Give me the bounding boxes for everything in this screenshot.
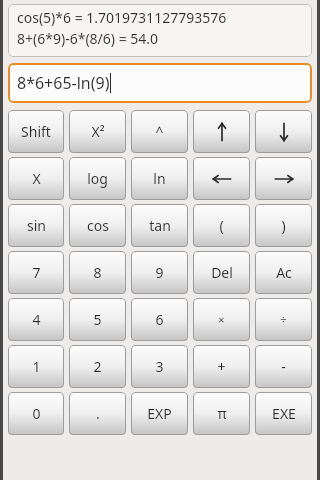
button[interactable]: ) — [255, 204, 312, 247]
staticText: EXP — [147, 404, 172, 423]
staticText: Ac — [276, 263, 292, 282]
staticText: ln — [153, 169, 166, 188]
staticText: π — [217, 404, 227, 423]
staticText: X — [32, 169, 41, 188]
staticText: ( — [219, 216, 224, 235]
button[interactable]: tan — [131, 204, 188, 247]
staticText: cos — [87, 216, 109, 235]
button[interactable]: sin — [8, 204, 64, 247]
button[interactable]: EXE — [255, 392, 312, 435]
button[interactable]: 8 — [69, 251, 126, 294]
staticText: 8*6+65-ln(9) — [17, 72, 110, 94]
staticText: tan — [149, 216, 171, 235]
button[interactable]: Move right — [255, 157, 312, 200]
button[interactable]: - — [255, 345, 312, 388]
staticText: cos(5)*6 = 1.7019731127793576 — [17, 8, 227, 27]
staticText: EXE — [272, 404, 296, 423]
staticText: - — [281, 357, 286, 376]
staticText: Shift — [21, 122, 51, 141]
staticText: 8+(6*9)-6*(8/6) = 54.0 — [17, 29, 159, 48]
staticText: ^ — [155, 122, 164, 141]
button[interactable]: ( — [193, 204, 250, 247]
button[interactable]: Del — [193, 251, 250, 294]
button[interactable]: X — [8, 157, 64, 200]
button[interactable]: Move up — [193, 110, 250, 153]
staticText: 4 — [32, 310, 41, 329]
button[interactable]: 2 — [69, 345, 126, 388]
button[interactable]: 7 — [8, 251, 64, 294]
staticText: × — [218, 312, 225, 327]
button[interactable]: log — [69, 157, 126, 200]
staticText: 2 — [93, 357, 102, 376]
staticText: 1 — [32, 357, 41, 376]
staticText: 3 — [155, 357, 164, 376]
staticText: 7 — [32, 263, 41, 282]
button[interactable]: cos — [69, 204, 126, 247]
button[interactable]: Shift — [8, 110, 64, 153]
button[interactable]: . — [69, 392, 126, 435]
button[interactable]: π — [193, 392, 250, 435]
staticText: 0 — [32, 404, 41, 423]
staticText: ) — [281, 216, 286, 235]
staticText: X² — [91, 122, 105, 141]
staticText: 6 — [155, 310, 164, 329]
button[interactable]: ln — [131, 157, 188, 200]
button[interactable]: ÷ — [255, 298, 312, 341]
button[interactable]: 8*6+65-ln(9) — [8, 63, 312, 103]
button[interactable]: 9 — [131, 251, 188, 294]
button[interactable]: 6 — [131, 298, 188, 341]
staticText: sin — [27, 216, 46, 235]
staticText: log — [87, 169, 108, 188]
staticText: + — [217, 357, 226, 376]
button[interactable]: 5 — [69, 298, 126, 341]
staticText: 8 — [93, 263, 102, 282]
button[interactable]: × — [193, 298, 250, 341]
button[interactable]: EXP — [131, 392, 188, 435]
staticText: Del — [211, 263, 233, 282]
button[interactable]: + — [193, 345, 250, 388]
staticText: 9 — [155, 263, 164, 282]
button[interactable]: 1 — [8, 345, 64, 388]
button[interactable]: ^ — [131, 110, 188, 153]
staticText: ÷ — [280, 312, 287, 327]
staticText: 5 — [93, 310, 102, 329]
button[interactable]: Move down — [255, 110, 312, 153]
button[interactable]: Ac — [255, 251, 312, 294]
button[interactable]: 4 — [8, 298, 64, 341]
button[interactable]: 0 — [8, 392, 64, 435]
button[interactable]: cos(5)*6 = 1.7019731127793576 — [8, 4, 312, 57]
button[interactable]: X² — [69, 110, 126, 153]
button[interactable]: Move left — [193, 157, 250, 200]
staticText: . — [96, 404, 100, 423]
button[interactable]: 3 — [131, 345, 188, 388]
